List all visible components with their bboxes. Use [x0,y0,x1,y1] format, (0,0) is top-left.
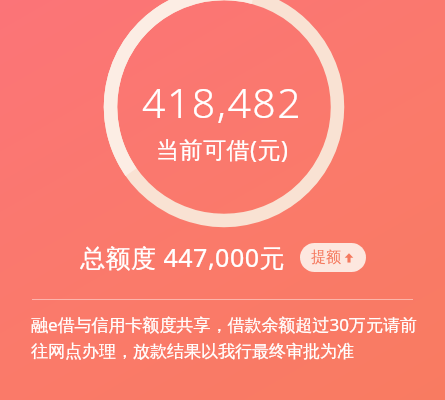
staticText: 融e借与信用卡额度共享，借款余额超过30万元请前往网点办理，放款结果以我行最终审… [31,313,420,362]
staticText: 提额 [311,248,341,267]
staticText: 当前可借(元) [156,133,289,164]
staticText: 总额度 447,000元 [80,240,286,274]
button[interactable]: 提额 Increase credit limit [300,243,366,272]
staticText: 418,482 [142,74,303,130]
